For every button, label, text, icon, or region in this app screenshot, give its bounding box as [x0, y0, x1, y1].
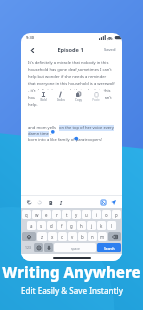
button[interactable]: Voice input: [44, 243, 53, 252]
button[interactable]: Undo: [26, 199, 33, 206]
button[interactable]: Redo: [36, 199, 43, 206]
button[interactable]: z: [37, 232, 47, 241]
staticText: j: [91, 223, 93, 229]
button[interactable]: Insert image: [100, 199, 107, 206]
staticText: Bold: [40, 98, 47, 102]
staticText: Episode 1: [57, 46, 84, 54]
staticText: i: [96, 212, 98, 218]
staticText: I: [60, 199, 62, 206]
button[interactable]: Paste: [87, 90, 105, 104]
button[interactable]: Bold: [47, 199, 54, 206]
staticText: d: [50, 223, 53, 229]
staticText: c: [61, 234, 64, 240]
staticText: Search: [104, 246, 115, 250]
button[interactable]: s: [37, 221, 46, 230]
staticText: o: [105, 212, 108, 218]
staticText: born into a like family of paratroopers!: [28, 137, 103, 143]
staticText: w: [35, 212, 39, 218]
button[interactable]: n: [88, 232, 97, 241]
staticText: space: [71, 246, 80, 250]
button[interactable]: h: [77, 221, 86, 230]
button[interactable]: Shift: [22, 232, 36, 241]
staticText: r: [56, 212, 58, 218]
staticText: a: [30, 223, 33, 229]
staticText: x: [51, 234, 54, 240]
button[interactable]: j: [87, 221, 96, 230]
staticText: Italics: [57, 98, 65, 102]
staticText: f: [61, 223, 63, 229]
staticText: q: [25, 212, 28, 218]
staticText: l: [111, 223, 113, 229]
button[interactable]: o: [102, 210, 111, 219]
button[interactable]: v: [68, 232, 77, 241]
staticText: t: [66, 212, 68, 218]
staticText: B: [49, 199, 53, 206]
staticText: and mom yells: [28, 125, 59, 131]
staticText: b: [81, 234, 84, 240]
button[interactable]: u: [82, 210, 91, 219]
staticText: u: [85, 212, 88, 218]
staticText: y: [75, 212, 78, 218]
button[interactable]: p: [112, 210, 121, 219]
staticText: h: [80, 223, 83, 229]
button[interactable]: Search: [97, 243, 121, 252]
staticText: damn time: [28, 131, 49, 137]
button[interactable]: Italic: [57, 199, 64, 206]
button[interactable]: e: [42, 210, 51, 219]
button[interactable]: Saved: [103, 47, 117, 52]
staticText: Edit Easily & Save Instantly: [21, 285, 123, 296]
staticText: k: [100, 223, 103, 229]
staticText: It's definitely a miracle that nobody in…: [28, 60, 115, 107]
button[interactable]: w: [32, 210, 41, 219]
button[interactable]: Backspace: [108, 232, 121, 241]
button[interactable]: f: [57, 221, 66, 230]
button[interactable]: y: [72, 210, 81, 219]
button[interactable]: m: [98, 232, 107, 241]
button[interactable]: t: [62, 210, 71, 219]
staticText: z: [41, 234, 44, 240]
staticText: Copy: [75, 98, 82, 102]
button[interactable]: d: [47, 221, 56, 230]
staticText: Writing Anywhere: [2, 262, 141, 282]
button[interactable]: a: [27, 221, 36, 230]
staticText: on the top of her voice every: [59, 125, 114, 131]
button[interactable]: r: [52, 210, 61, 219]
staticText: e: [45, 212, 48, 218]
button[interactable]: b: [78, 232, 87, 241]
staticText: p: [115, 212, 118, 218]
staticText: s: [40, 223, 43, 229]
button[interactable]: space: [54, 243, 96, 252]
button[interactable]: Send: [110, 199, 117, 206]
button[interactable]: 123: [22, 243, 33, 252]
button[interactable]: Emoji: [34, 243, 43, 252]
button[interactable]: Copy: [69, 90, 87, 104]
button[interactable]: x: [48, 232, 57, 241]
button[interactable]: Italics: [52, 90, 69, 104]
button[interactable]: q: [22, 210, 31, 219]
staticText: 123: [25, 245, 31, 250]
button[interactable]: Back: [26, 44, 38, 56]
button[interactable]: Bold: [35, 90, 52, 104]
staticText: v: [71, 234, 74, 240]
button[interactable]: l: [107, 221, 116, 230]
staticText: Saved: [104, 47, 116, 52]
staticText: g: [70, 223, 73, 229]
staticText: n: [91, 234, 94, 240]
staticText: 9:30: [26, 35, 34, 40]
staticText: Paste: [92, 98, 100, 102]
button[interactable]: k: [97, 221, 106, 230]
button[interactable]: i: [92, 210, 101, 219]
button[interactable]: g: [67, 221, 76, 230]
button[interactable]: c: [58, 232, 67, 241]
staticText: m: [100, 234, 105, 240]
staticText: -: [50, 131, 52, 137]
